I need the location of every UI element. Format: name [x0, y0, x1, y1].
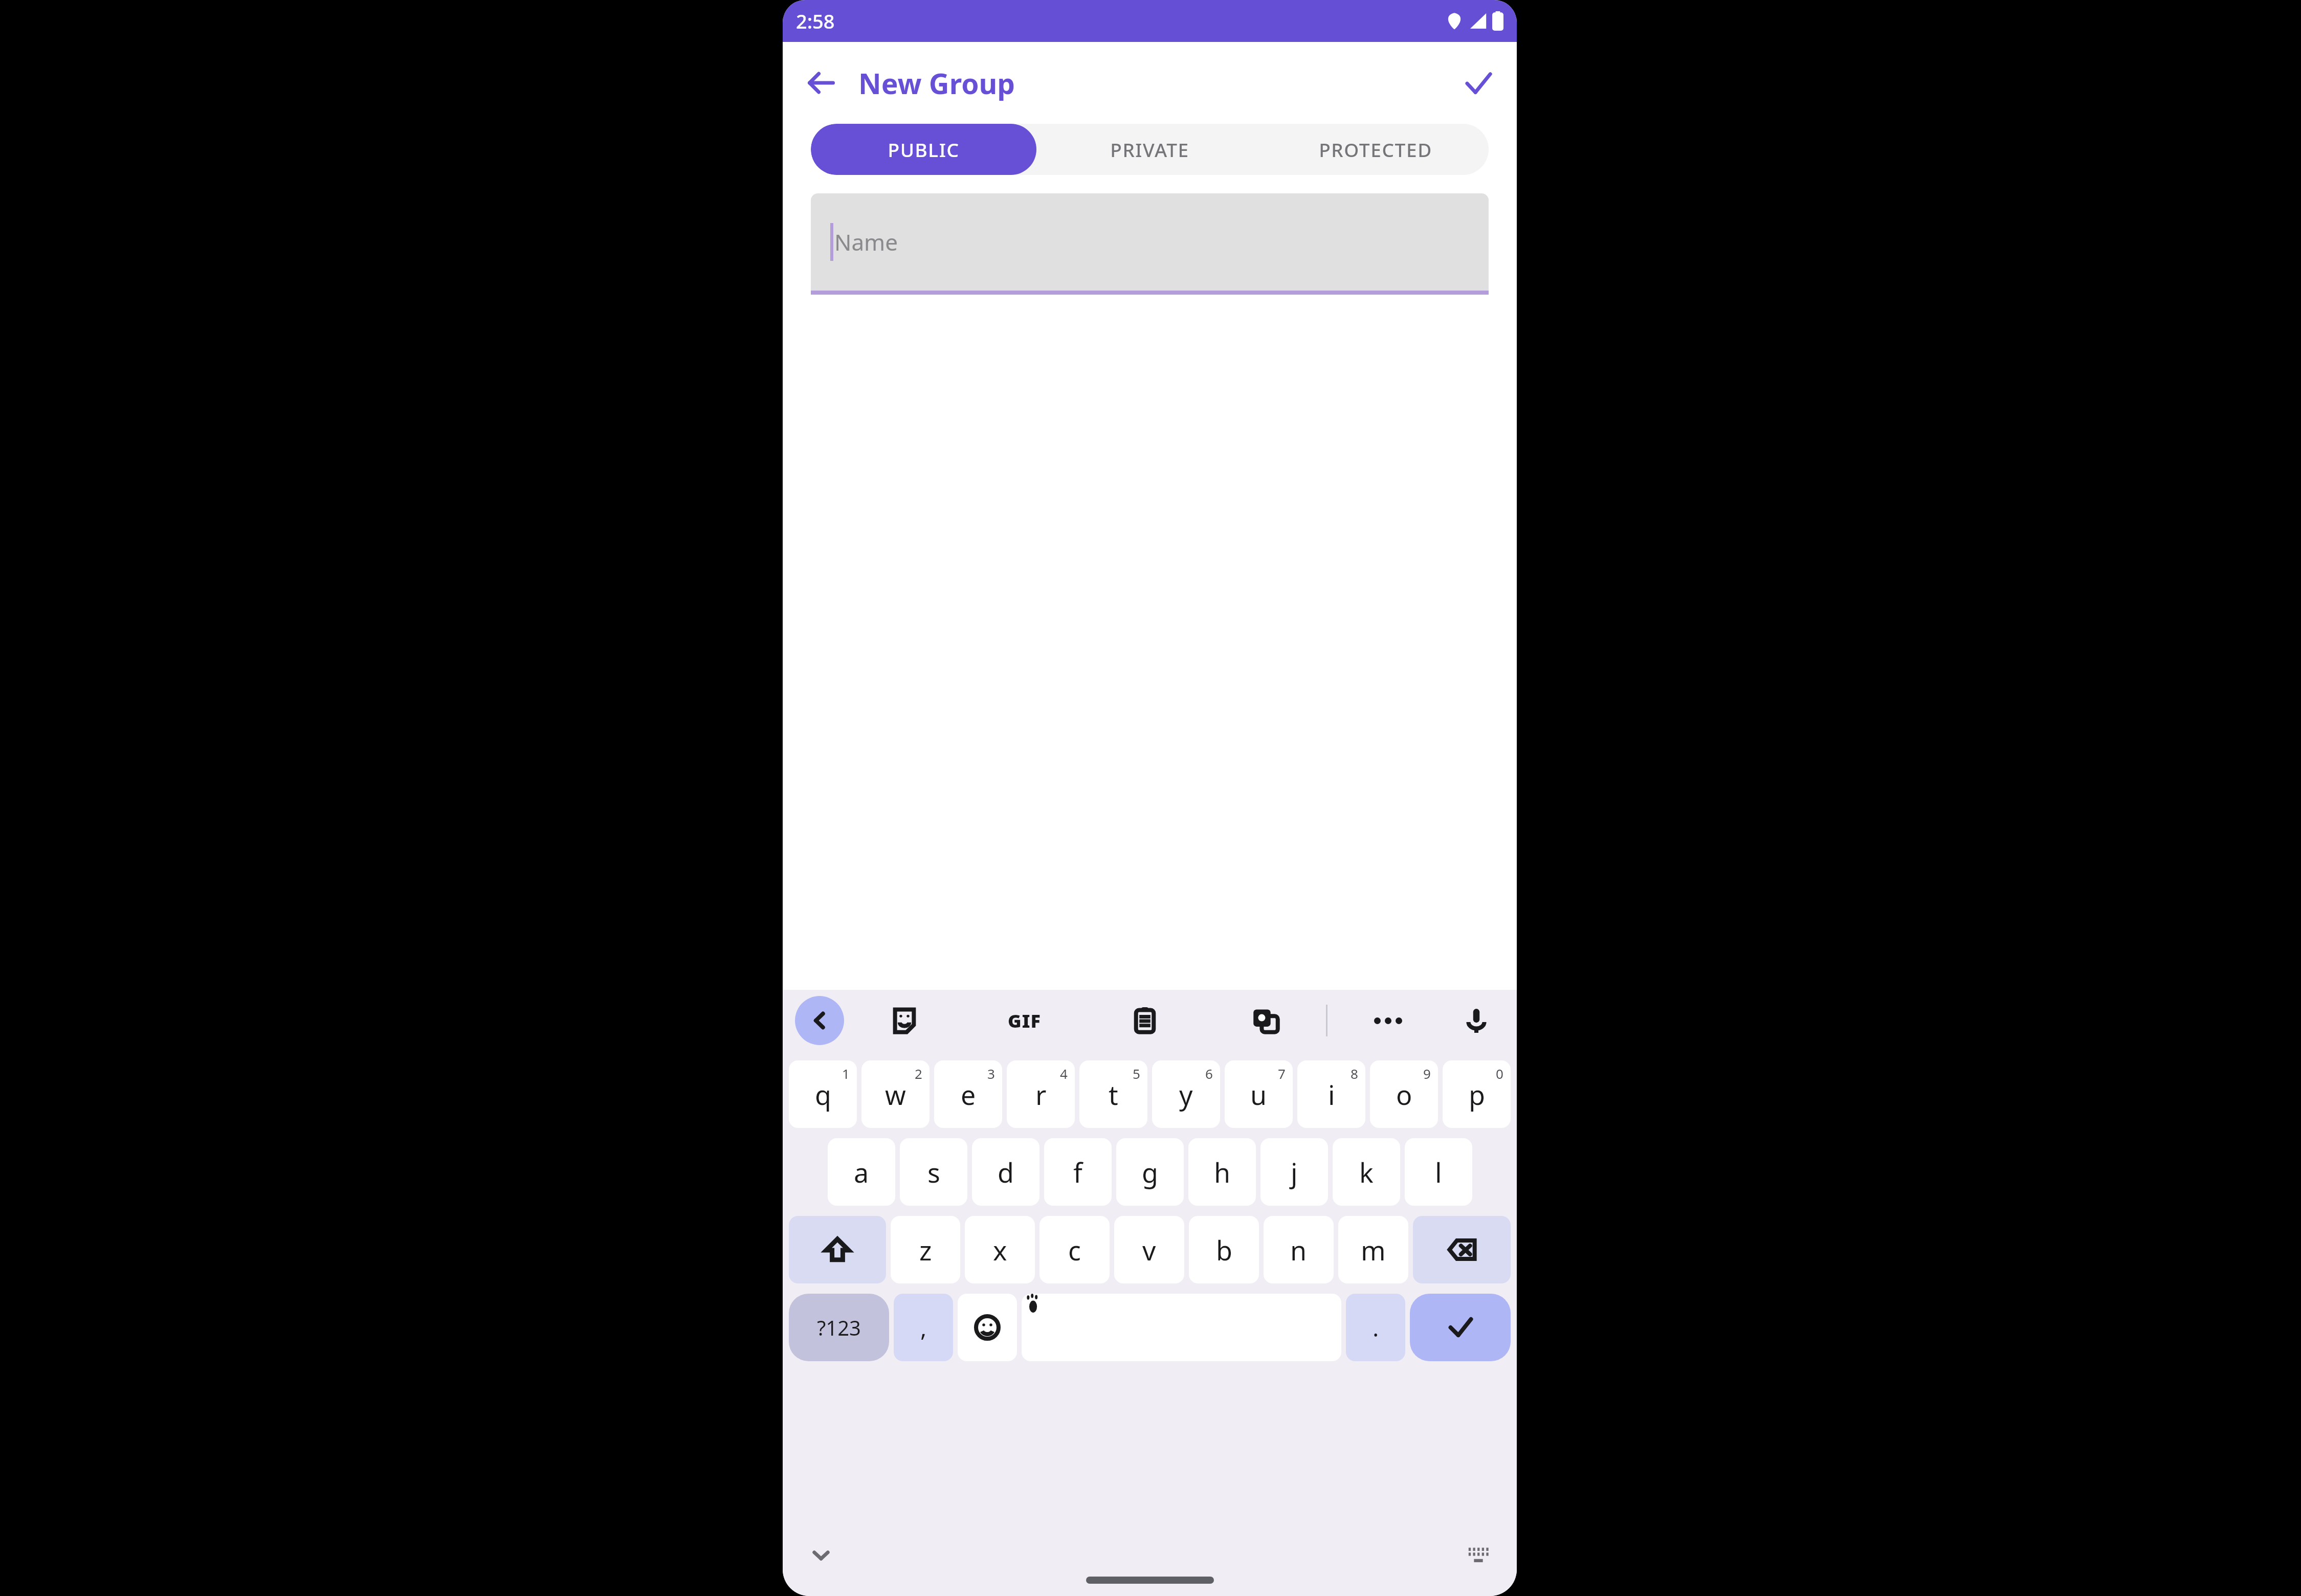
staticText: o: [1396, 1076, 1412, 1113]
staticText: j: [1291, 1154, 1298, 1190]
staticText: y: [1179, 1076, 1193, 1113]
button[interactable]: i: [1297, 1060, 1365, 1128]
button[interactable]: s: [900, 1138, 967, 1206]
button[interactable]: Backspace: [1413, 1216, 1511, 1283]
staticText: 3: [987, 1065, 995, 1082]
button[interactable]: a: [828, 1138, 895, 1206]
button[interactable]: k: [1333, 1138, 1400, 1206]
button[interactable]: ?123: [789, 1294, 889, 1361]
button[interactable]: GIF: [964, 990, 1085, 1051]
staticText: 0: [1496, 1065, 1503, 1082]
button[interactable]: p: [1443, 1060, 1511, 1128]
staticText: k: [1359, 1154, 1374, 1190]
staticText: PUBLIC: [888, 137, 960, 162]
button[interactable]: t: [1079, 1060, 1147, 1128]
staticText: p: [1469, 1076, 1485, 1113]
button[interactable]: q: [789, 1060, 857, 1128]
button[interactable]: Confirm: [1450, 55, 1507, 111]
staticText: c: [1068, 1232, 1081, 1268]
button[interactable]: o: [1370, 1060, 1438, 1128]
button[interactable]: Translate: [1205, 990, 1326, 1051]
staticText: 2:58: [796, 8, 835, 34]
staticText: l: [1435, 1154, 1442, 1190]
button[interactable]: ,: [894, 1294, 953, 1361]
button[interactable]: PRIVATE: [1036, 124, 1263, 175]
button[interactable]: Clipboard: [1085, 990, 1205, 1051]
staticText: i: [1328, 1076, 1335, 1113]
staticText: 6: [1205, 1065, 1213, 1082]
button[interactable]: Enter: [1410, 1294, 1511, 1361]
button[interactable]: n: [1264, 1216, 1334, 1283]
staticText: z: [919, 1232, 932, 1268]
button[interactable]: c: [1039, 1216, 1110, 1283]
button[interactable]: w: [861, 1060, 930, 1128]
button[interactable]: j: [1260, 1138, 1328, 1206]
staticText: g: [1142, 1154, 1158, 1190]
staticText: h: [1214, 1154, 1231, 1190]
staticText: .: [1373, 1312, 1379, 1344]
button[interactable]: Emoji: [958, 1294, 1017, 1361]
staticText: 4: [1060, 1065, 1068, 1082]
staticText: e: [961, 1076, 976, 1113]
staticText: PROTECTED: [1319, 137, 1432, 162]
staticText: 9: [1423, 1065, 1431, 1082]
staticText: w: [885, 1076, 906, 1113]
button[interactable]: Change keyboard: [1455, 1532, 1501, 1578]
button[interactable]: More options: [1327, 990, 1448, 1051]
button[interactable]: PUBLIC: [811, 124, 1036, 175]
button[interactable]: r: [1007, 1060, 1075, 1128]
button[interactable]: Hide keyboard: [798, 1532, 844, 1578]
staticText: x: [993, 1232, 1007, 1268]
staticText: s: [927, 1154, 940, 1190]
staticText: r: [1035, 1076, 1047, 1113]
button[interactable]: e: [934, 1060, 1002, 1128]
staticText: n: [1290, 1232, 1307, 1268]
button[interactable]: u: [1225, 1060, 1293, 1128]
button[interactable]: b: [1189, 1216, 1259, 1283]
staticText: Name: [834, 227, 898, 257]
staticText: q: [815, 1076, 831, 1113]
button[interactable]: h: [1188, 1138, 1256, 1206]
staticText: u: [1250, 1076, 1267, 1113]
button[interactable]: PROTECTED: [1263, 124, 1489, 175]
button[interactable]: Back: [793, 55, 849, 111]
staticText: PRIVATE: [1110, 137, 1189, 162]
staticText: d: [998, 1154, 1014, 1190]
staticText: m: [1361, 1232, 1386, 1268]
staticText: t: [1109, 1076, 1118, 1113]
button[interactable]: Stickers: [844, 990, 964, 1051]
staticText: b: [1216, 1232, 1232, 1268]
button[interactable]: Name: [811, 193, 1489, 291]
button[interactable]: Shift: [789, 1216, 886, 1283]
button[interactable]: z: [891, 1216, 960, 1283]
staticText: 1: [842, 1065, 850, 1082]
staticText: 5: [1133, 1065, 1140, 1082]
button[interactable]: y: [1152, 1060, 1220, 1128]
button[interactable]: v: [1114, 1216, 1184, 1283]
button[interactable]: .: [1346, 1294, 1405, 1361]
staticText: 8: [1351, 1065, 1358, 1082]
staticText: a: [854, 1154, 869, 1190]
staticText: 2: [915, 1065, 922, 1082]
staticText: ?123: [817, 1314, 861, 1341]
staticText: New Group: [858, 64, 1015, 102]
button[interactable]: d: [972, 1138, 1039, 1206]
button[interactable]: g: [1116, 1138, 1184, 1206]
button[interactable]: l: [1405, 1138, 1472, 1206]
button[interactable]: Voice input: [1448, 990, 1504, 1051]
button[interactable]: f: [1044, 1138, 1112, 1206]
staticText: f: [1073, 1154, 1082, 1190]
button[interactable]: Previous: [795, 996, 844, 1045]
staticText: GIF: [1008, 1008, 1041, 1033]
button[interactable]: x: [965, 1216, 1035, 1283]
staticText: ,: [920, 1312, 927, 1344]
button[interactable]: m: [1338, 1216, 1408, 1283]
staticText: 7: [1278, 1065, 1286, 1082]
button[interactable]: Space: [1022, 1294, 1341, 1361]
staticText: v: [1142, 1232, 1156, 1268]
